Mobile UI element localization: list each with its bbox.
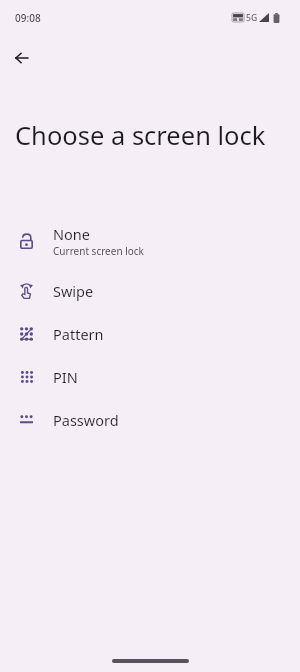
staticText: Password [53,410,119,430]
staticText: Pattern [53,324,104,344]
button[interactable]: Back [1,38,41,78]
button[interactable]: Password [0,398,300,441]
staticText: Current screen lock [53,244,144,258]
staticText: 09:08 [15,11,41,25]
staticText: Choose a screen lock [15,118,266,153]
staticText: None [53,224,90,244]
button[interactable]: Swipe [0,269,300,312]
staticText: Swipe [53,281,94,301]
staticText: 5G [246,12,258,24]
button[interactable]: PIN [0,355,300,398]
button[interactable]: None [0,215,300,266]
button[interactable]: Pattern [0,312,300,355]
staticText: PIN [53,367,78,387]
